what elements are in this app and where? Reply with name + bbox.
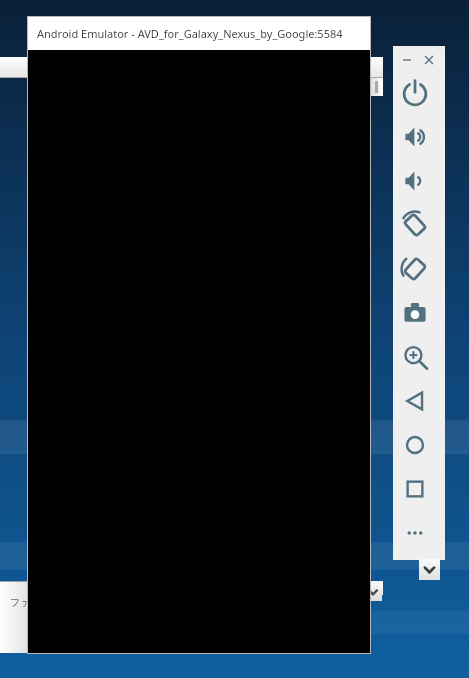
button[interactable]: Power <box>399 77 431 109</box>
button[interactable]: Minimize <box>398 51 416 69</box>
staticText: Android Emulator - AVD_for_Galaxy_Nexus_… <box>37 26 343 41</box>
button[interactable]: Volume down <box>399 165 431 197</box>
button[interactable]: Rotate left <box>399 209 431 241</box>
button[interactable]: Volume up <box>399 121 431 153</box>
staticText: ファ <box>10 596 31 609</box>
button[interactable]: Show more controls <box>419 559 440 580</box>
button[interactable]: Take screenshot <box>399 297 431 329</box>
button[interactable]: Back <box>399 385 431 417</box>
button[interactable]: Close <box>420 51 438 69</box>
button[interactable]: Overview <box>399 473 431 505</box>
button[interactable]: Rotate right <box>399 253 431 285</box>
button[interactable]: Home <box>399 429 431 461</box>
button[interactable]: Expand <box>364 583 382 601</box>
button[interactable]: Zoom <box>399 341 431 373</box>
button[interactable]: More <box>399 517 431 549</box>
